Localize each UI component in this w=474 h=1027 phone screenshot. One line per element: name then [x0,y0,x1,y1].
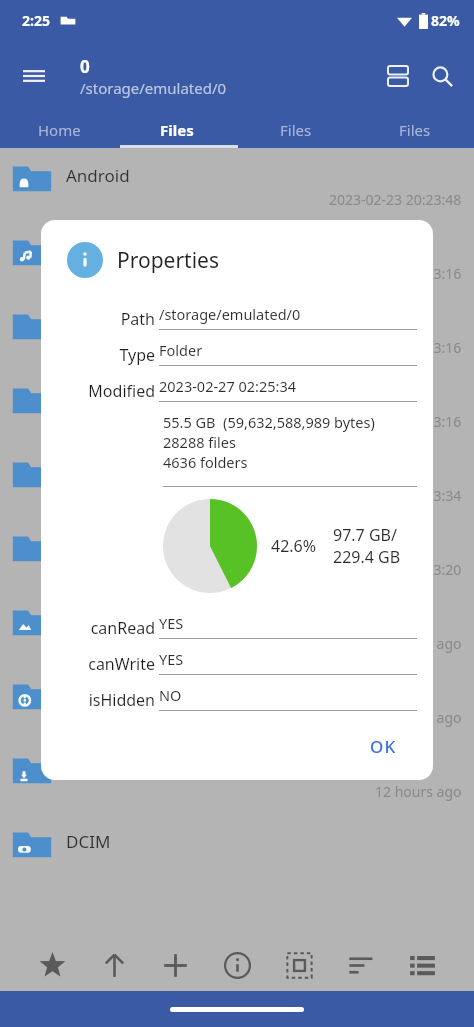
button[interactable]: Files [355,112,474,148]
button[interactable]: Menu [12,54,56,98]
staticText: DCIM [66,830,111,853]
staticText: 2:25 [22,11,50,30]
staticText: 2023-02-23 20:23:34 [329,486,462,505]
staticText: 13 hours ago [375,634,462,653]
button[interactable]: Up [92,943,136,987]
button[interactable]: Add [153,943,197,987]
staticText: YES [159,613,184,633]
staticText: /storage/emulated/0 [80,78,227,98]
button[interactable]: Files [118,112,236,148]
staticText: Pictures [66,608,130,631]
staticText: 4636 folders [163,452,248,472]
staticText: 13 hours ago [375,708,462,727]
staticText: NO [159,685,182,705]
button[interactable]: Music [0,222,474,296]
staticText: YES [159,649,184,669]
staticText: /storage/emulated/0 [159,304,301,324]
button[interactable]: 2023-02-23 20:23:16 [0,296,474,370]
button[interactable]: 2023-02-23 20:23:20 [0,518,474,592]
staticText: 2023-02-23 20:23:20 [329,560,462,579]
button[interactable]: Favorites [30,943,74,987]
staticText: 82% [431,11,460,30]
button[interactable]: Info [215,943,259,987]
staticText: Files [399,120,431,140]
button[interactable]: View list [400,943,444,987]
staticText: Android [66,164,130,187]
staticText: Modified [41,380,155,402]
staticText: Files [160,120,194,140]
staticText: isHidden [41,689,155,711]
staticText: 0 [80,55,90,78]
button[interactable]: Select all [277,943,321,987]
button[interactable]: Search [420,54,464,98]
staticText: Movies [66,682,123,705]
staticText: Home [38,120,81,140]
staticText: 28288 files [163,432,236,452]
staticText: 2023-02-23 20:23:16 [329,264,462,283]
staticText: canWrite [41,653,155,675]
button[interactable]: 2023-02-23 20:23:34 [0,444,474,518]
staticText: canRead [41,617,155,639]
staticText: 2023-02-23 20:23:16 [329,338,462,357]
staticText: 2023-02-23 20:23:16 [329,412,462,431]
button[interactable]: Files [236,112,355,148]
staticText: 2023-02-27 02:25:34 [159,376,296,396]
button[interactable]: Home [0,112,118,148]
staticText: 97.7 GB/229.4 GB [333,524,433,568]
staticText: 55.5 GB (59,632,588,989 bytes) [163,412,375,432]
staticText: 12 hours ago [375,782,462,801]
button[interactable]: Download [0,740,474,814]
staticText: 42.6% [271,535,317,557]
button[interactable]: Android [0,148,474,222]
staticText: OK [370,735,397,758]
staticText: 2023-02-23 20:23:48 [329,190,462,209]
staticText: Type [41,344,155,366]
button[interactable]: Pictures [0,592,474,666]
staticText: Path [41,308,155,330]
staticText: Properties [117,246,219,275]
button[interactable]: Split view [376,54,420,98]
staticText: Folder [159,340,203,360]
staticText: Files [280,120,312,140]
button[interactable]: Sort [339,943,383,987]
button[interactable]: DCIM [0,814,474,888]
button[interactable]: 2023-02-23 20:23:16 [0,370,474,444]
button[interactable]: Movies [0,666,474,740]
button[interactable]: OK [360,729,407,764]
staticText: Music [66,238,113,261]
